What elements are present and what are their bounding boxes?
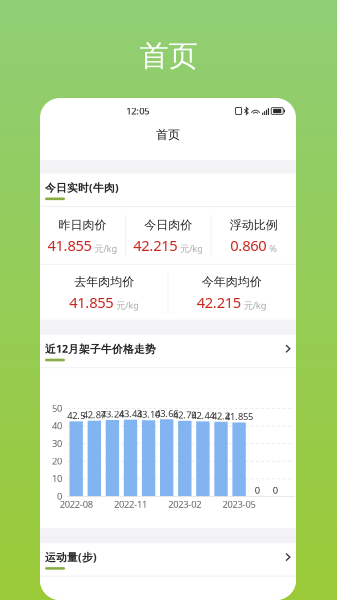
staticText: 2022-11 [114,498,147,510]
staticText: 0 [273,484,278,496]
staticText: 首页 [156,127,180,142]
staticText: 42.2 [212,410,230,422]
staticText: 42.5 [67,409,85,421]
staticText: 42.79 [173,409,196,421]
staticText: 41.855 [225,410,253,423]
button[interactable]: 运动量(步) [40,543,291,572]
staticText: 43.66 [155,407,178,419]
staticText: 2022-08 [60,498,93,510]
staticText: 浮动比例 [230,217,278,232]
staticText: 30 [52,437,62,449]
staticText: 50 [52,402,62,414]
staticText: 昨日肉价 [58,217,106,232]
staticText: 20 [52,455,62,467]
staticText: 元/kg [244,299,267,311]
staticText: 元/kg [94,242,117,255]
staticText: 0 [255,484,260,496]
staticText: 去年肉均价 [74,274,134,289]
staticText: 运动量(步) [45,550,97,564]
staticText: 今日肉价 [144,217,192,232]
staticText: 2023-02 [168,498,201,510]
staticText: 42.87 [83,408,106,421]
staticText: 42.215 [133,236,177,255]
staticText: 41.855 [47,236,91,255]
staticText: 42.44 [191,409,214,422]
staticText: 元/kg [180,242,203,255]
staticText: 43.10 [137,408,160,420]
staticText: 首页 [139,38,197,74]
staticText: 2023-05 [223,498,256,510]
staticText: 12:05 [126,105,149,117]
staticText: 今年肉均价 [202,274,262,289]
staticText: 40 [52,419,62,432]
staticText: 43.43 [119,407,142,420]
staticText: 42.215 [197,292,241,312]
staticText: % [269,242,277,255]
staticText: 近12月架子牛价格走势 [45,342,156,356]
staticText: 10 [52,472,62,485]
button[interactable]: 近12月架子牛价格走势 [40,335,291,363]
staticText: 0 [57,490,62,502]
staticText: 0.860 [230,236,266,255]
staticText: 43.24 [101,408,124,420]
staticText: 今日实时(牛肉) [45,180,119,195]
staticText: 元/kg [116,299,139,311]
staticText: 41.855 [69,292,113,312]
